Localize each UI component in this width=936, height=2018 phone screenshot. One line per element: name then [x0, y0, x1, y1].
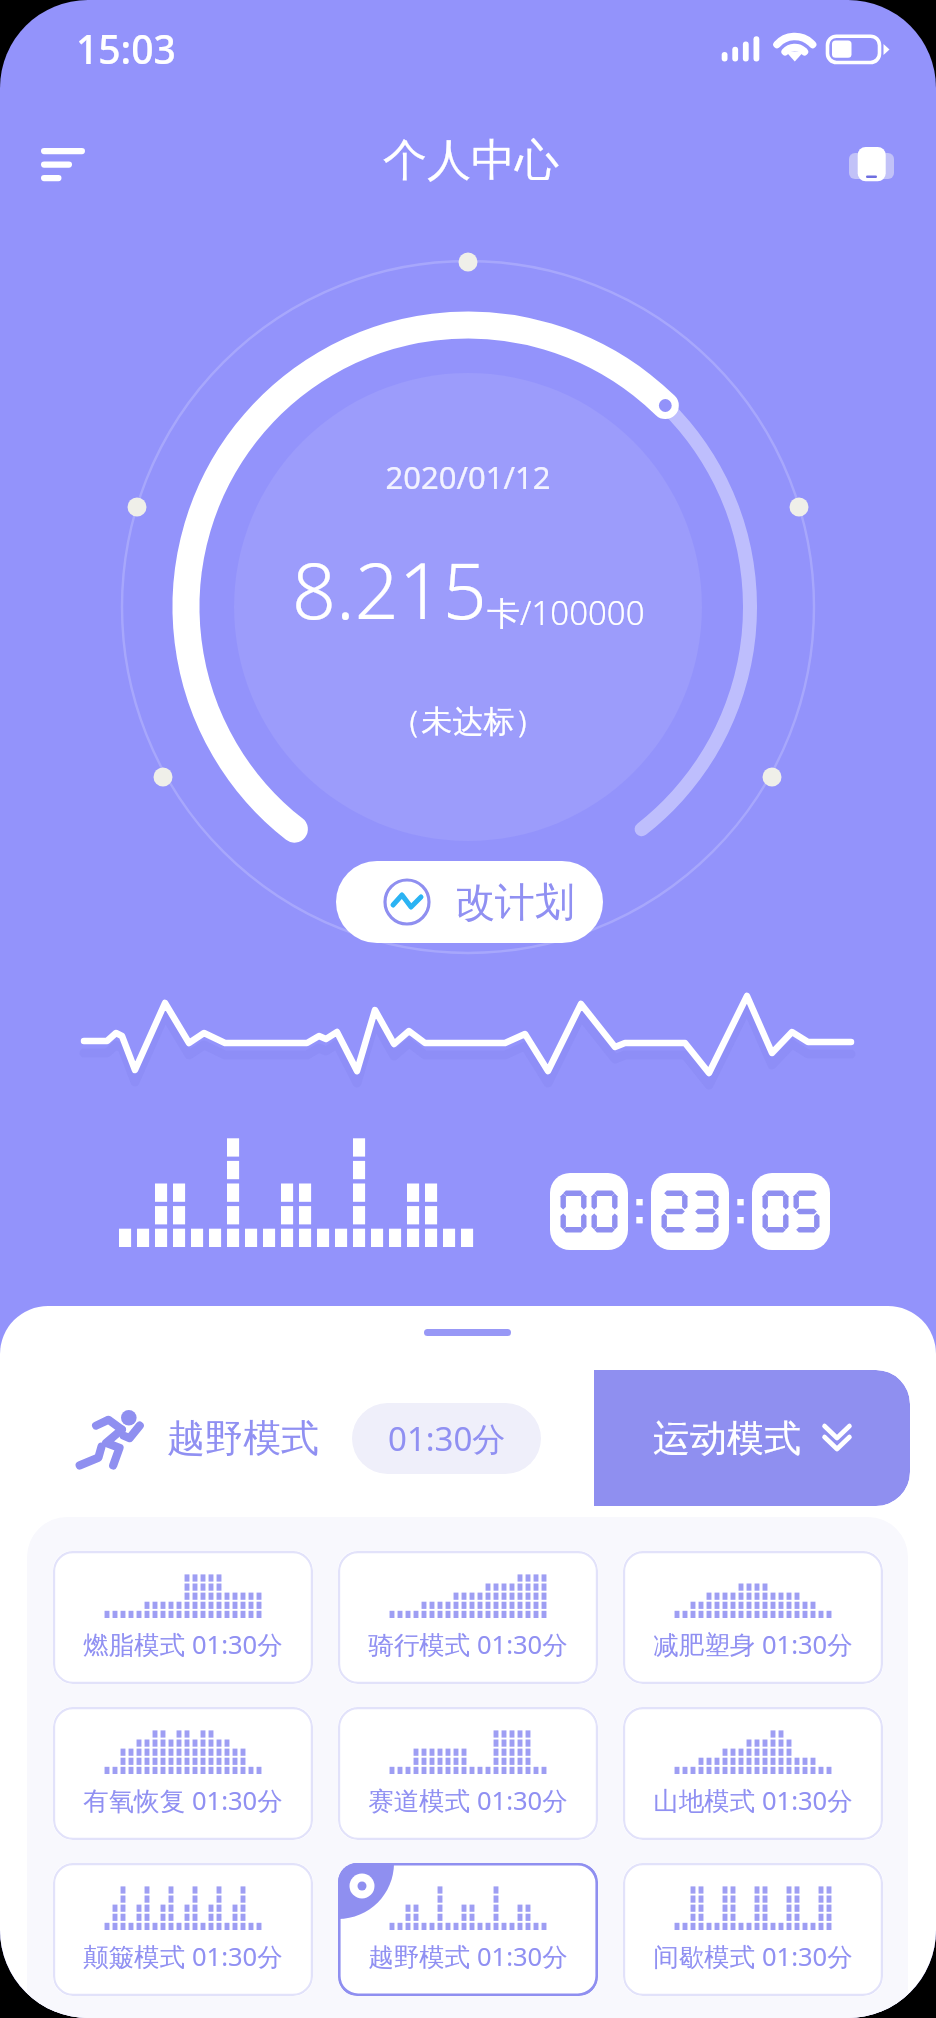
button[interactable]: 颠簸模式 01:30分 [53, 1863, 313, 1996]
button[interactable]: 有氧恢复 01:30分 [53, 1707, 313, 1840]
button[interactable]: 运动模式 [594, 1370, 910, 1506]
button[interactable]: Menu [20, 123, 108, 207]
button[interactable]: 越野模式 01:30分 [338, 1863, 598, 1996]
button[interactable]: 燃脂模式 01:30分 [53, 1551, 313, 1684]
staticText: 2020/01/12 [0, 456, 936, 498]
button[interactable]: 减肥塑身 01:30分 [623, 1551, 883, 1684]
staticText: 运动模式 [653, 1415, 801, 1462]
staticText: 有氧恢复 01:30分 [83, 1783, 283, 1818]
staticText: 越野模式 [167, 1414, 319, 1462]
staticText: 减肥塑身 01:30分 [653, 1627, 853, 1662]
staticText: （未达标） [0, 702, 936, 741]
button[interactable]: 赛道模式 01:30分 [338, 1707, 598, 1840]
staticText: 颠簸模式 01:30分 [83, 1939, 283, 1974]
staticText: 赛道模式 01:30分 [368, 1783, 568, 1818]
button[interactable]: 间歇模式 01:30分 [623, 1863, 883, 1996]
button[interactable]: 改计划 [336, 861, 603, 943]
staticText: 山地模式 01:30分 [653, 1783, 853, 1818]
button[interactable]: Switch card view [829, 122, 914, 206]
button[interactable]: 骑行模式 01:30分 [338, 1551, 598, 1684]
button[interactable]: 山地模式 01:30分 [623, 1707, 883, 1840]
staticText: 间歇模式 01:30分 [653, 1939, 853, 1974]
staticText: 骑行模式 01:30分 [368, 1627, 568, 1662]
staticText: 8.215 [292, 537, 487, 642]
staticText: 改计划 [455, 877, 575, 927]
staticText: 15:03 [76, 22, 176, 75]
staticText: 01:30分 [388, 1416, 506, 1461]
staticText: 卡/100000 [487, 590, 645, 635]
button[interactable]: 越野模式 [30, 1370, 594, 1506]
staticText: 个人中心 [383, 133, 559, 188]
staticText: 越野模式 01:30分 [368, 1939, 568, 1974]
staticText: 燃脂模式 01:30分 [83, 1627, 283, 1662]
